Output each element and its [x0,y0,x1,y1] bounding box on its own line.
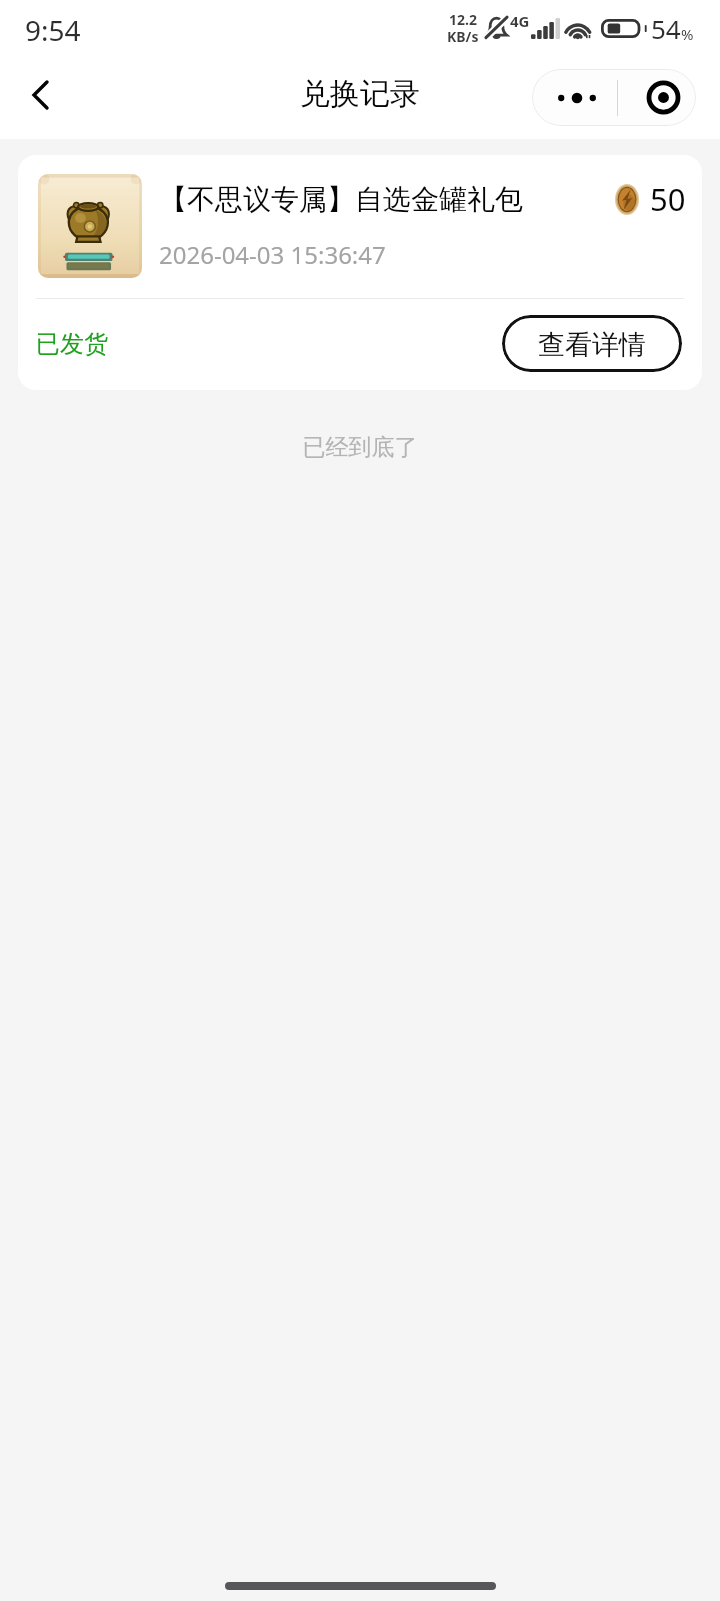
button[interactable]: Back [0,56,76,139]
staticText: KB/s [447,27,479,46]
button[interactable]: More options [532,69,617,126]
button[interactable]: 查看详情 [502,315,682,372]
staticText: 已发货 [36,329,108,359]
staticText: 查看详情 [538,328,646,362]
staticText: 【不思议专属】自选金罐礼包 [159,182,523,217]
staticText: 兑换记录 [300,75,420,113]
staticText: 2026-04-03 15:36:47 [159,238,386,271]
staticText: 已经到底了 [0,433,720,462]
staticText: 50 [650,178,686,220]
button[interactable]: Close mini program [618,69,696,126]
staticText: 54 [651,11,681,46]
staticText: 9:54 [25,11,81,49]
button[interactable]: 【不思议专属】自选金罐礼包 [18,155,702,390]
staticText: 12.2 [449,10,477,29]
staticText: 4G [510,11,530,31]
staticText: % [681,24,694,44]
